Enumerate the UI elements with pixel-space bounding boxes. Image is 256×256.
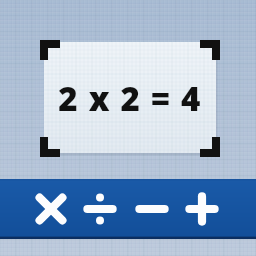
staticText: 2 x 2 = 4 bbox=[58, 76, 202, 120]
button[interactable]: Operators: multiply, divide, minus, plus bbox=[0, 0, 256, 256]
button[interactable]: 2 x 2 = 4 bbox=[44, 76, 216, 120]
